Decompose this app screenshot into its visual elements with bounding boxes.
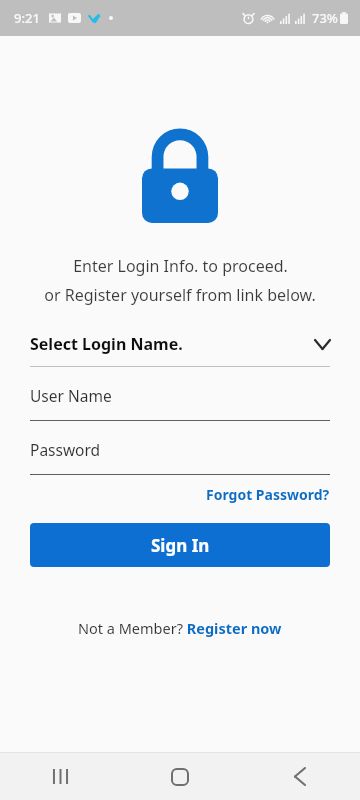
other: Open login name list bbox=[315, 340, 330, 349]
button[interactable]: Back bbox=[240, 753, 360, 800]
staticText: Sign In bbox=[151, 534, 210, 557]
button[interactable]: User Name bbox=[0, 367, 360, 421]
staticText: Forgot Password? bbox=[206, 485, 330, 504]
button[interactable]: Password bbox=[0, 421, 360, 475]
staticText: 73% bbox=[312, 9, 338, 27]
staticText: 9:21 bbox=[14, 9, 40, 27]
button[interactable]: Sign In bbox=[30, 523, 330, 567]
staticText: User Name bbox=[30, 385, 112, 406]
button[interactable]: Recent apps bbox=[0, 753, 120, 800]
button[interactable]: Select Login Name. bbox=[0, 333, 360, 355]
staticText: Enter Login Info. to proceed. bbox=[73, 255, 288, 277]
staticText: Password bbox=[30, 439, 101, 460]
button[interactable]: Not a Member? Register now bbox=[70, 614, 290, 642]
button[interactable]: Forgot Password? bbox=[206, 475, 330, 506]
staticText: or Register yourself from link below. bbox=[44, 284, 316, 306]
staticText: Select Login Name. bbox=[30, 333, 183, 355]
staticText: Not a Member? Register now bbox=[78, 618, 282, 638]
button[interactable]: Home bbox=[120, 753, 240, 800]
